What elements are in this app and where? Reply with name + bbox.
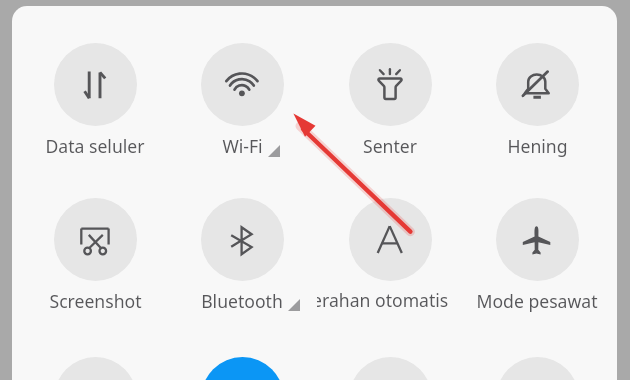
- button[interactable]: Wi-Fi: [169, 43, 315, 161]
- staticText: Data seluler: [45, 134, 145, 158]
- staticText: Screenshot: [49, 289, 142, 313]
- staticText: Mode pesawat: [476, 289, 598, 313]
- button[interactable]: Quick setting toggle: [464, 357, 610, 380]
- button[interactable]: Quick setting toggle: [22, 357, 168, 380]
- button[interactable]: Senter: [317, 43, 463, 161]
- staticText: Bluetooth: [201, 289, 283, 313]
- button[interactable]: Screenshot: [22, 198, 168, 316]
- button[interactable]: Mode pesawat: [464, 198, 610, 316]
- button[interactable]: Quick setting toggle: [169, 357, 315, 380]
- staticText: Cerahan otomatis: [317, 288, 434, 312]
- button[interactable]: Data seluler: [22, 43, 168, 161]
- button[interactable]: Cerahan otomatis: [317, 198, 463, 316]
- button[interactable]: Quick setting toggle: [317, 357, 463, 380]
- staticText: Hening: [507, 134, 568, 158]
- staticText: Senter: [363, 134, 417, 158]
- button[interactable]: Hening: [464, 43, 610, 161]
- button[interactable]: Bluetooth: [169, 198, 315, 316]
- staticText: Wi-Fi: [222, 134, 263, 158]
